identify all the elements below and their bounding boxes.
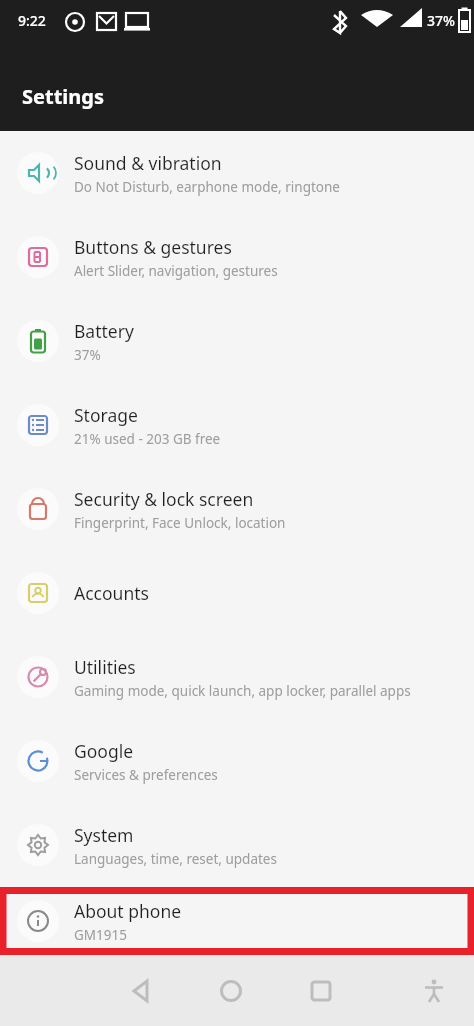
button[interactable]: Sound & vibration: [0, 131, 474, 215]
button[interactable]: Recent apps: [276, 955, 366, 1026]
staticText: Fingerprint, Face Unlock, location: [74, 514, 286, 532]
staticText: Buttons & gestures: [74, 235, 232, 259]
staticText: 21% used - 203 GB free: [74, 430, 221, 448]
button[interactable]: Storage: [0, 383, 474, 467]
button[interactable]: Accounts: [0, 551, 474, 635]
button[interactable]: About phone: [0, 887, 474, 955]
staticText: 37%: [74, 346, 101, 364]
staticText: Languages, time, reset, updates: [74, 850, 277, 868]
button[interactable]: Security & lock screen: [0, 467, 474, 551]
staticText: System: [74, 823, 134, 847]
button[interactable]: Home: [186, 955, 276, 1026]
staticText: Security & lock screen: [74, 487, 254, 511]
button[interactable]: Accessibility: [402, 955, 466, 1026]
staticText: Alert Slider, navigation, gestures: [74, 262, 278, 280]
button[interactable]: Utilities: [0, 635, 474, 719]
staticText: Services & preferences: [74, 766, 218, 784]
staticText: Sound & vibration: [74, 151, 222, 175]
staticText: GM1915: [74, 926, 127, 944]
staticText: About phone: [74, 899, 182, 923]
button[interactable]: System: [0, 803, 474, 887]
button[interactable]: Buttons & gestures: [0, 215, 474, 299]
staticText: 37%: [427, 11, 455, 30]
button[interactable]: Google: [0, 719, 474, 803]
staticText: Gaming mode, quick launch, app locker, p…: [74, 682, 411, 700]
staticText: 9:22: [18, 11, 46, 30]
button[interactable]: Back: [96, 955, 186, 1026]
staticText: Google: [74, 739, 134, 763]
staticText: Utilities: [74, 655, 136, 679]
staticText: Settings: [22, 83, 104, 110]
staticText: Accounts: [74, 581, 149, 605]
button[interactable]: Battery: [0, 299, 474, 383]
staticText: Storage: [74, 403, 138, 427]
staticText: Battery: [74, 319, 134, 343]
staticText: Do Not Disturb, earphone mode, ringtone: [74, 178, 340, 196]
